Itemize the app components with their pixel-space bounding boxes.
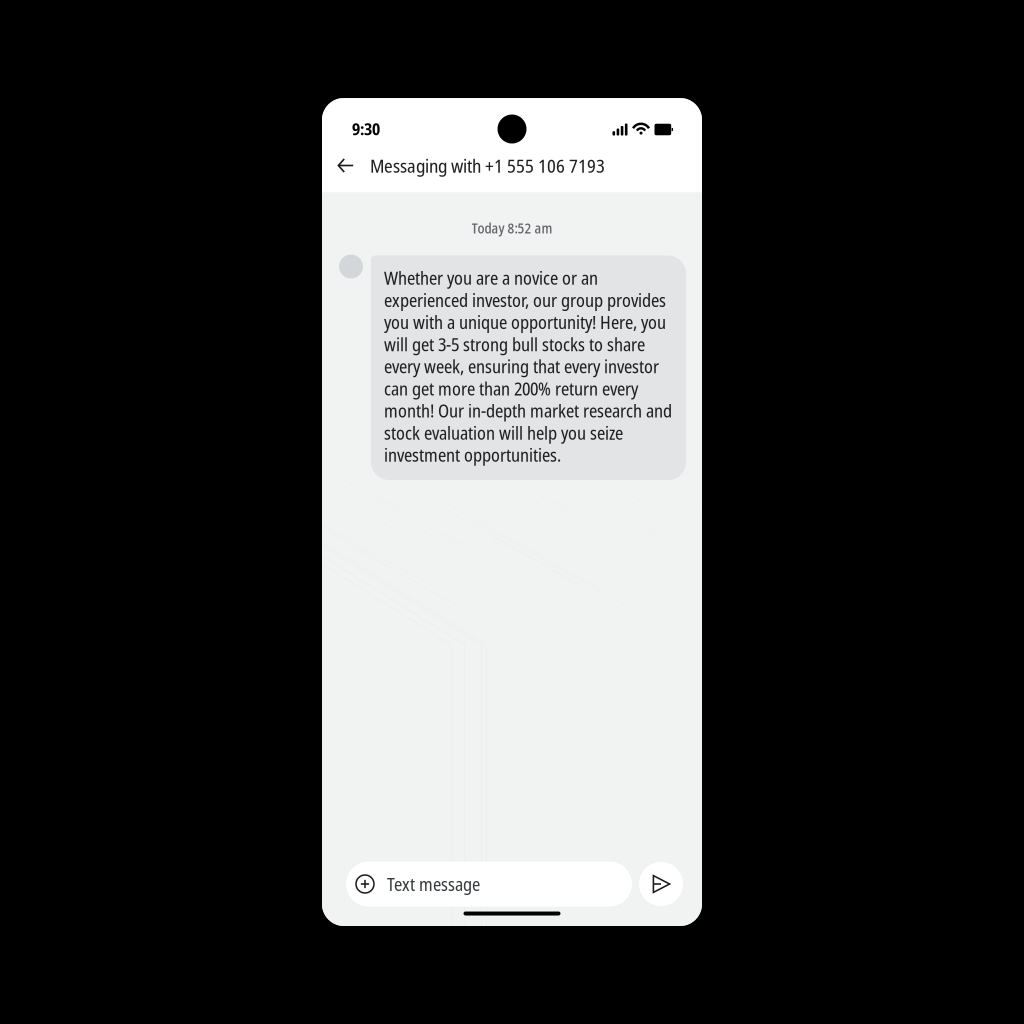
staticText: Text message [387, 872, 480, 896]
staticText: Messaging with +1 555 106 7193 [370, 153, 605, 178]
button[interactable]: Messaging with +1 555 106 7193 [361, 149, 605, 182]
staticText: 9:30 [352, 117, 380, 140]
button[interactable]: Send [639, 862, 683, 906]
button[interactable]: Whether you are a novice or an experienc… [371, 256, 686, 480]
staticText: Whether you are a novice or an experienc… [384, 266, 672, 467]
button[interactable]: Text message [346, 861, 632, 906]
staticText: Today 8:52 am [471, 218, 552, 238]
button[interactable]: Back [330, 151, 361, 179]
